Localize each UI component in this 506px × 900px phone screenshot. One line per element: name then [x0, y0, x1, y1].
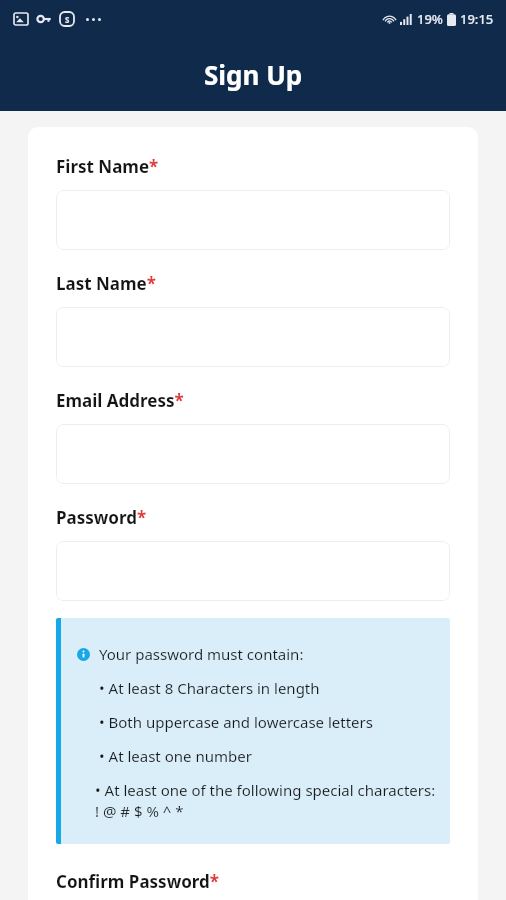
staticText: First Name* — [56, 155, 159, 178]
staticText: Password* — [56, 506, 147, 529]
staticText: • At least one number — [99, 746, 252, 766]
staticText: • Both uppercase and lowercase letters — [99, 712, 373, 732]
staticText: • At least one of the following special … — [95, 780, 436, 822]
button[interactable] — [56, 307, 450, 367]
staticText: Email Address* — [56, 389, 184, 412]
staticText: Your password must contain: — [99, 644, 304, 664]
button[interactable] — [56, 190, 450, 250]
staticText: 19% — [417, 10, 443, 28]
button[interactable] — [56, 424, 450, 484]
staticText: S — [65, 14, 70, 25]
staticText: • At least 8 Characters in length — [99, 678, 320, 698]
staticText: Confirm Password* — [56, 870, 220, 893]
staticText: Last Name* — [56, 272, 156, 295]
staticText: Sign Up — [204, 57, 303, 92]
button[interactable] — [56, 541, 450, 601]
staticText: 19:15 — [460, 10, 494, 28]
